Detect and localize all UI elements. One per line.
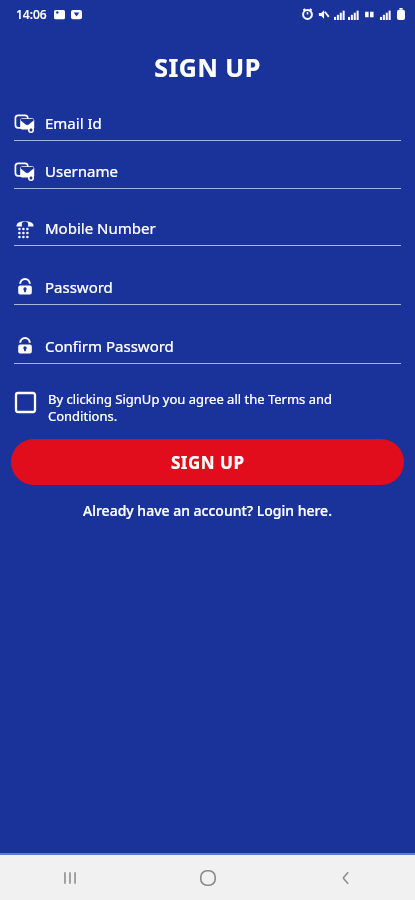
staticText: By clicking SignUp you agree all the Ter…	[48, 390, 381, 425]
button[interactable]: Mobile Number	[0, 217, 415, 246]
button[interactable]: Email Id	[0, 112, 415, 141]
staticText: Already have an account? Login here.	[83, 501, 332, 520]
button[interactable]: Already have an account? Login here.	[0, 497, 415, 524]
staticText: Mobile Number	[45, 218, 156, 238]
staticText: Email Id	[45, 113, 102, 133]
button[interactable]: Username	[0, 160, 415, 189]
button[interactable]: Password	[0, 276, 415, 305]
button[interactable]: Recent apps	[0, 855, 139, 900]
staticText: SIGN UP	[171, 451, 245, 474]
button[interactable]: Home	[139, 855, 277, 900]
staticText: Confirm Password	[45, 336, 174, 356]
button[interactable]: Back	[277, 855, 415, 900]
button[interactable]: SIGN UP	[11, 439, 404, 485]
staticText: Username	[45, 161, 118, 181]
staticText: Password	[45, 277, 113, 297]
button[interactable]: By clicking SignUp you agree all the Ter…	[0, 390, 415, 425]
staticText: 14:06	[16, 6, 47, 22]
staticText: SIGN UP	[0, 50, 415, 84]
button[interactable]: Confirm Password	[0, 335, 415, 364]
